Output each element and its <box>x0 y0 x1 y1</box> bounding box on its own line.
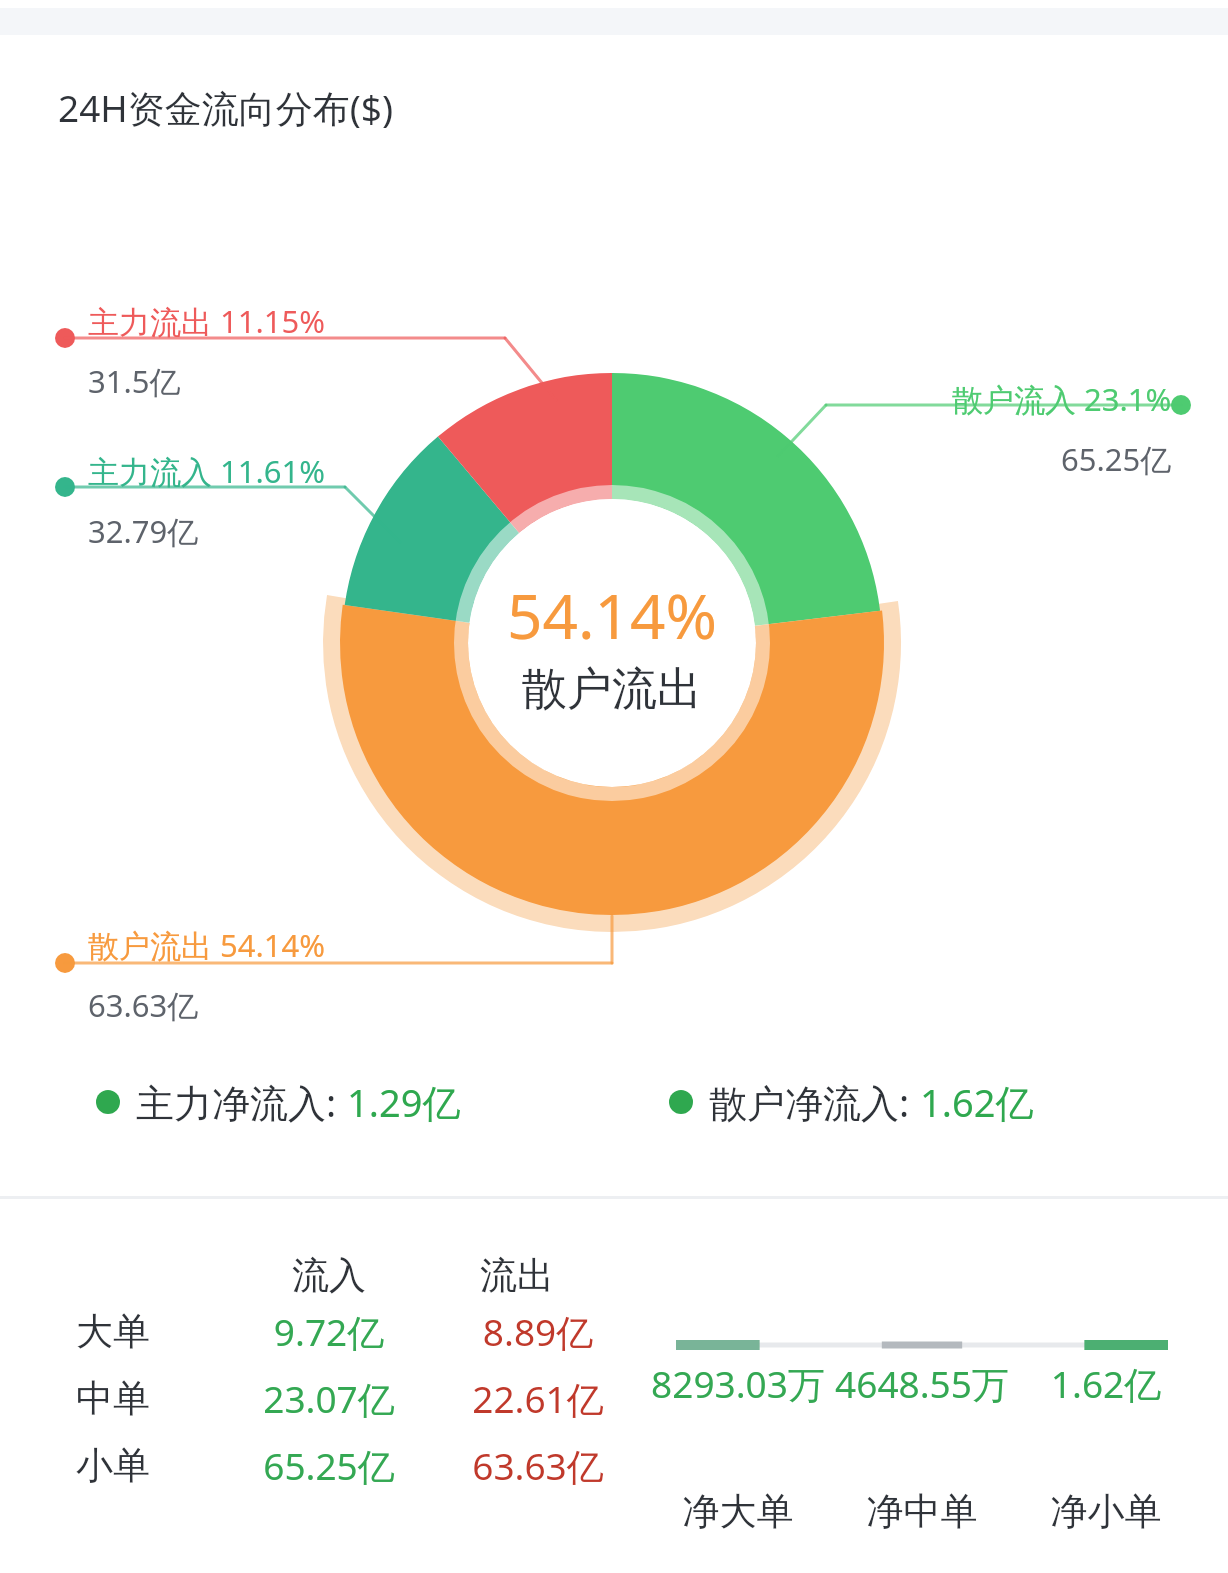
button[interactable]: 净中单 <box>830 1488 1014 1535</box>
staticText: 9.72亿 <box>216 1306 442 1357</box>
button[interactable]: 大单 <box>76 1306 636 1357</box>
button[interactable]: 4648.55万 <box>830 1358 1014 1409</box>
staticText: 8.89亿 <box>442 1306 634 1357</box>
button[interactable]: 24H资金流向分布($) <box>58 82 394 133</box>
button[interactable]: 散户流入 23.1% <box>752 378 1172 480</box>
button[interactable]: 1.62亿 <box>1014 1358 1198 1409</box>
button[interactable]: 净小单 <box>1014 1488 1198 1535</box>
staticText: 主力净流入: <box>136 1076 347 1128</box>
staticText: 63.63亿 <box>88 984 199 1026</box>
staticText: 散户流入 23.1% <box>952 378 1172 420</box>
staticText: 63.63亿 <box>442 1440 634 1491</box>
staticText: 65.25亿 <box>1061 438 1172 480</box>
staticText: 散户净流入: <box>709 1076 920 1128</box>
staticText: 净小单 <box>1014 1488 1198 1535</box>
staticText: 1.62亿 <box>920 1076 1034 1128</box>
staticText: 23.07亿 <box>216 1373 442 1424</box>
staticText: 54.14% <box>507 573 717 657</box>
button[interactable]: 主力流出 11.15% <box>88 300 508 402</box>
staticText: 24H资金流向分布($) <box>58 82 394 133</box>
staticText: 1.62亿 <box>1014 1358 1198 1409</box>
button[interactable]: 净大单 <box>646 1488 830 1535</box>
button[interactable]: 散户流出 54.14% <box>88 924 508 1026</box>
staticText: 主力流出 11.15% <box>88 300 326 342</box>
staticText: 31.5亿 <box>88 360 181 402</box>
staticText: 22.61亿 <box>442 1373 634 1424</box>
button[interactable]: 主力净流入: <box>96 1076 461 1128</box>
staticText: 流出 <box>404 1252 630 1299</box>
staticText: 4648.55万 <box>830 1358 1014 1409</box>
staticText: 散户流出 <box>522 661 702 718</box>
staticText: 中单 <box>76 1375 150 1422</box>
staticText: 净中单 <box>830 1488 1014 1535</box>
staticText: 32.79亿 <box>88 510 199 552</box>
button[interactable]: 散户净流入: <box>669 1076 1034 1128</box>
button[interactable]: 主力流入 11.61% <box>88 450 508 552</box>
staticText: 小单 <box>76 1442 150 1489</box>
staticText: 流入 <box>216 1252 442 1299</box>
button[interactable]: 中单 <box>76 1373 636 1424</box>
button[interactable]: 8293.03万 <box>646 1358 830 1409</box>
staticText: 65.25亿 <box>216 1440 442 1491</box>
staticText: 净大单 <box>646 1488 830 1535</box>
staticText: 8293.03万 <box>646 1358 830 1409</box>
staticText: 散户流出 54.14% <box>88 924 326 966</box>
button[interactable]: 小单 <box>76 1440 636 1491</box>
staticText: 主力流入 11.61% <box>88 450 326 492</box>
staticText: 大单 <box>76 1308 150 1355</box>
staticText: 1.29亿 <box>347 1076 461 1128</box>
